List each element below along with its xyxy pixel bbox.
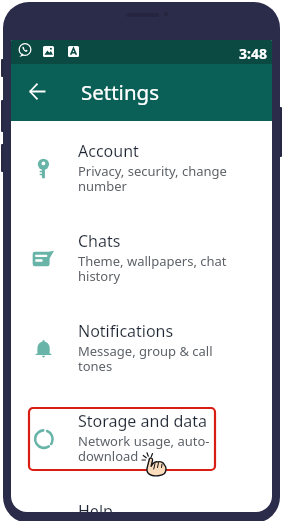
staticText: Theme, wallpapers, chat history — [78, 252, 227, 285]
button[interactable]: Storage and data — [11, 409, 272, 499]
staticText: Help — [78, 500, 113, 512]
staticText: Settings — [81, 78, 160, 106]
button[interactable]: Account — [11, 139, 272, 229]
button[interactable]: Chats — [11, 229, 272, 319]
button[interactable]: Notifications — [11, 319, 272, 409]
button[interactable]: Back — [21, 75, 54, 108]
staticText: Notifications — [78, 320, 174, 342]
button[interactable]: Help — [11, 499, 272, 512]
staticText: Chats — [78, 230, 121, 252]
staticText: Storage and data — [78, 410, 207, 432]
staticText: Account — [78, 140, 139, 162]
staticText: Privacy, security, change number — [78, 162, 227, 195]
staticText: Network usage, auto- download — [78, 432, 210, 465]
staticText: Message, group & call tones — [78, 342, 213, 375]
staticText: 3:48 — [239, 44, 267, 63]
